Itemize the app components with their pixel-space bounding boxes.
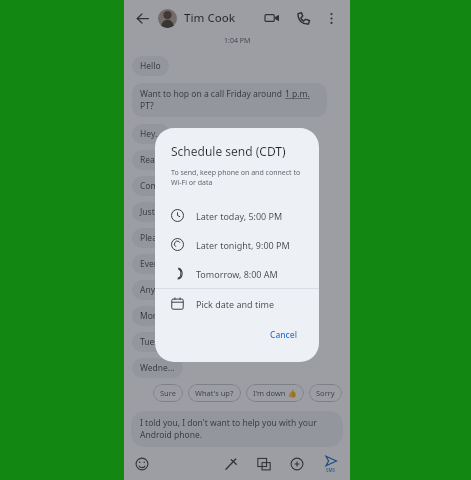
button[interactable]: Sorry [309, 384, 342, 402]
button[interactable]: Hello [132, 56, 169, 76]
staticText: Just T… [140, 206, 168, 218]
staticText: 1 p.m. [285, 88, 310, 100]
staticText: Tomorrow, 8:00 AM [196, 268, 278, 280]
button[interactable]: Later tonight, 9:00 PM [155, 230, 319, 259]
button[interactable]: Send SMS [319, 452, 343, 476]
button[interactable]: Want to hop on a call Friday around [132, 83, 327, 117]
staticText: To send, keep phone on and connect to [171, 168, 301, 178]
button[interactable]: Just T… [132, 202, 176, 222]
button[interactable]: Video call [261, 7, 283, 29]
staticText: I told you, I don't want to help you wit… [140, 417, 317, 429]
staticText: SMS [326, 467, 336, 473]
staticText: Come… [140, 180, 170, 192]
staticText: Hey… [140, 128, 162, 140]
staticText: Sure [160, 388, 176, 398]
button[interactable]: Call [292, 7, 314, 29]
staticText: Android phone. [140, 429, 202, 441]
staticText: Pick date and time [196, 298, 275, 310]
staticText: I'm down 👍 [253, 388, 297, 398]
staticText: Later tonight, 9:00 PM [196, 239, 290, 251]
staticText: Want to hop on a call Friday around [140, 88, 285, 100]
staticText: Tuesd… [140, 336, 171, 348]
button[interactable]: Wedne… [132, 358, 183, 378]
button[interactable]: Back [131, 7, 153, 29]
button[interactable]: Pick date and time [155, 289, 319, 318]
staticText: Wi-Fi or data [171, 178, 213, 188]
button[interactable]: Hey… [132, 124, 170, 144]
button[interactable]: Voice message [220, 453, 242, 475]
button[interactable]: Tuesd… [132, 332, 179, 352]
staticText: What's up? [195, 388, 234, 398]
staticText: Anytim… [140, 284, 175, 296]
button[interactable]: Later today, 5:00 PM [155, 201, 319, 230]
button[interactable]: Pleas… [132, 228, 176, 248]
staticText: Sorry [316, 388, 335, 398]
button[interactable]: Come… [132, 176, 178, 196]
button[interactable]: Gallery [253, 453, 275, 475]
button[interactable]: Add attachment [286, 453, 308, 475]
button[interactable]: Tomorrow, 8:00 AM [155, 259, 319, 288]
staticText: PT? [140, 100, 154, 112]
staticText: Cancel [270, 329, 297, 341]
button[interactable]: Sure [153, 384, 183, 402]
staticText: Tim Cook [184, 10, 236, 26]
staticText: Hello [140, 60, 161, 72]
button[interactable]: Cancel [262, 324, 305, 346]
button[interactable]: Anytim… [132, 280, 183, 300]
staticText: Even… [140, 258, 166, 270]
button[interactable]: Even… [132, 254, 174, 274]
button[interactable]: Really… [132, 150, 178, 170]
button[interactable]: I told you, I don't want to help you wit… [131, 411, 343, 447]
staticText: Later today, 5:00 PM [196, 210, 283, 222]
staticText: Pleas… [140, 232, 168, 244]
staticText: Monda… [140, 310, 175, 322]
button[interactable]: Monda… [132, 306, 183, 326]
staticText: Wedne… [140, 362, 175, 374]
button[interactable]: Emoji [131, 453, 153, 475]
button[interactable]: I'm down 👍 [246, 384, 304, 402]
button[interactable]: More options [320, 7, 342, 29]
button[interactable]: What's up? [188, 384, 241, 402]
staticText: Schedule send (CDT) [171, 143, 286, 159]
staticText: 1:04 PM [224, 36, 251, 46]
staticText: Really… [140, 154, 170, 166]
